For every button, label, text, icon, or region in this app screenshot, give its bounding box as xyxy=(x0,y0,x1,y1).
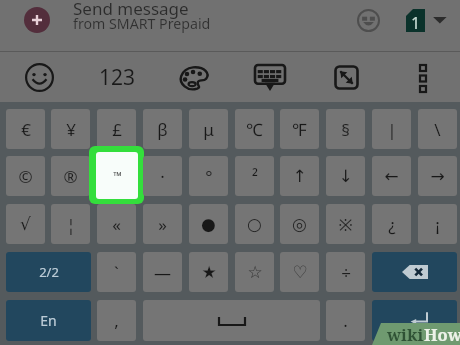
button[interactable]: → xyxy=(418,156,457,196)
button[interactable]: 123 xyxy=(94,52,140,102)
button[interactable]: β xyxy=(143,109,182,149)
staticText: ¿ xyxy=(388,213,396,236)
staticText: ¡ xyxy=(435,213,440,236)
button[interactable]: ↑ xyxy=(280,156,319,196)
button[interactable]: » xyxy=(143,204,182,244)
button[interactable]: ※ xyxy=(326,204,365,244)
staticText: En xyxy=(40,311,57,330)
button[interactable]: ` xyxy=(97,252,136,292)
staticText: ¦ xyxy=(66,213,76,236)
button[interactable]: ° xyxy=(189,156,228,196)
staticText: | xyxy=(387,118,397,141)
button[interactable]: . xyxy=(326,300,365,341)
button[interactable]: | xyxy=(372,109,411,149)
button[interactable]: ◎ xyxy=(280,204,319,244)
button[interactable]: , xyxy=(97,300,136,341)
staticText: £ xyxy=(112,118,122,141)
staticText: μ xyxy=(203,118,214,141)
button[interactable] xyxy=(372,300,457,341)
button[interactable]: √ xyxy=(6,204,45,244)
button[interactable]: ★ xyxy=(189,252,228,292)
staticText: β xyxy=(157,118,168,141)
button[interactable]: Choose SIM xyxy=(428,12,452,28)
button[interactable]: Theme xyxy=(178,63,210,92)
staticText: ® xyxy=(63,165,78,188)
staticText: ÷ xyxy=(341,261,351,284)
button[interactable]: ℃ xyxy=(235,109,274,149)
staticText: ○ xyxy=(247,214,262,234)
button[interactable]: Emoji xyxy=(25,63,54,92)
staticText: . xyxy=(343,309,348,332)
staticText: ℉ xyxy=(292,118,307,141)
staticText: ♡ xyxy=(292,262,308,282)
staticText: « xyxy=(112,213,121,236)
staticText: ※ xyxy=(338,213,353,236)
staticText: 1 xyxy=(411,12,421,34)
staticText: · xyxy=(160,165,165,188)
button[interactable]: § xyxy=(326,109,365,149)
staticText: ° xyxy=(205,165,213,188)
staticText: » xyxy=(158,213,167,236)
button[interactable]: ÷ xyxy=(326,252,365,292)
staticText: © xyxy=(18,165,33,188)
staticText: 123 xyxy=(99,63,136,92)
staticText: ℃ xyxy=(246,118,263,141)
button[interactable]: Resize keyboard xyxy=(334,65,359,90)
staticText: ` xyxy=(114,261,119,284)
button[interactable]: SIM 1 xyxy=(406,9,425,32)
button[interactable]: \ xyxy=(418,109,457,149)
staticText: ¥ xyxy=(66,118,76,141)
staticText: — xyxy=(154,261,171,284)
staticText: ★ xyxy=(201,262,217,282)
button[interactable]: ← xyxy=(372,156,411,196)
button[interactable]: Emoji xyxy=(357,9,380,32)
button[interactable]: ¿ xyxy=(372,204,411,244)
button[interactable]: ¦ xyxy=(51,204,90,244)
staticText: \ xyxy=(434,118,441,141)
button[interactable]: ² xyxy=(235,156,274,196)
button[interactable]: © xyxy=(6,156,45,196)
staticText: ● xyxy=(201,214,216,234)
button[interactable]: ○ xyxy=(235,204,274,244)
button[interactable]: ♡ xyxy=(280,252,319,292)
button[interactable]: ¡ xyxy=(418,204,457,244)
button[interactable]: — xyxy=(143,252,182,292)
button[interactable]: More options xyxy=(415,65,431,92)
button[interactable]: € xyxy=(6,109,45,149)
staticText: How xyxy=(424,323,460,345)
staticText: § xyxy=(341,118,350,141)
button[interactable]: ℉ xyxy=(280,109,319,149)
staticText: ↑ xyxy=(292,166,307,186)
staticText: wiki xyxy=(387,323,424,345)
button[interactable]: ● xyxy=(189,204,228,244)
button[interactable]: ® xyxy=(51,156,90,196)
button[interactable]: En xyxy=(6,300,91,341)
staticText: ™ xyxy=(113,168,122,183)
staticText: ◎ xyxy=(292,214,307,234)
button[interactable]: 2/2 xyxy=(6,252,91,292)
staticText: √ xyxy=(20,214,31,234)
button[interactable]: Add attachment xyxy=(24,7,50,33)
staticText: ↓ xyxy=(338,166,353,186)
staticText: from SMART Prepaid xyxy=(73,14,211,33)
staticText: → xyxy=(430,166,445,186)
staticText: ← xyxy=(384,166,399,186)
button[interactable]: « xyxy=(97,204,136,244)
staticText: Send message xyxy=(73,0,189,20)
button[interactable]: ↓ xyxy=(326,156,365,196)
staticText: 2/2 xyxy=(39,263,59,281)
staticText: , xyxy=(114,309,119,332)
staticText: ² xyxy=(252,165,258,188)
button[interactable] xyxy=(143,300,320,341)
button[interactable]: ™ xyxy=(96,152,138,199)
button[interactable]: Hide keyboard xyxy=(255,65,285,91)
button[interactable]: · xyxy=(143,156,182,196)
button[interactable]: μ xyxy=(189,109,228,149)
staticText: € xyxy=(21,118,31,141)
button[interactable] xyxy=(372,252,457,292)
button[interactable]: ☆ xyxy=(235,252,274,292)
staticText: ☆ xyxy=(247,262,263,282)
button[interactable]: £ xyxy=(97,109,136,149)
button[interactable]: ¥ xyxy=(51,109,90,149)
